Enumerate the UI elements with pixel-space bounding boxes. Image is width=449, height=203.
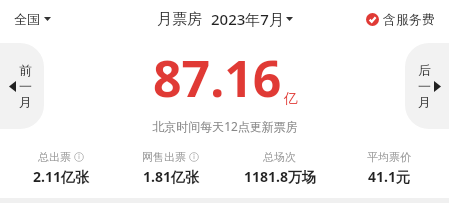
staticText: 2023年7月 bbox=[211, 9, 284, 29]
staticText: 全国 bbox=[14, 11, 40, 27]
staticText: 亿 bbox=[284, 90, 298, 108]
staticText: 平均票价 bbox=[367, 150, 411, 164]
staticText: 1181.8万场 bbox=[244, 167, 316, 186]
staticText: 月 bbox=[19, 94, 32, 110]
button[interactable]: 含服务费 bbox=[366, 11, 435, 27]
staticText: 月 bbox=[418, 94, 431, 110]
staticText: 2.11亿张 bbox=[33, 167, 89, 186]
staticText: 一 bbox=[19, 78, 32, 94]
staticText: 总场次 bbox=[263, 150, 296, 164]
staticText: 87.16 bbox=[153, 44, 282, 112]
staticText: 总出票 bbox=[38, 150, 71, 164]
button[interactable]: 月票房 bbox=[157, 9, 293, 29]
staticText: 前 bbox=[19, 62, 32, 78]
staticText: 一 bbox=[418, 78, 431, 94]
staticText: 北京时间每天12点更新票房 bbox=[152, 118, 298, 134]
button[interactable]: 上一月 bbox=[0, 43, 44, 129]
staticText: 月票房 bbox=[157, 10, 202, 29]
staticText: 后 bbox=[418, 62, 431, 78]
button[interactable]: 总场次 bbox=[225, 150, 334, 186]
button[interactable]: 下一月 bbox=[405, 43, 449, 129]
staticText: 网售出票 bbox=[142, 150, 186, 164]
button[interactable]: 平均票价 bbox=[334, 150, 443, 186]
button[interactable]: 网售出票 bbox=[116, 150, 225, 186]
staticText: 41.1元 bbox=[368, 167, 410, 186]
staticText: 1.81亿张 bbox=[143, 167, 199, 186]
button[interactable]: 全国 bbox=[14, 11, 51, 27]
button[interactable]: 总出票 bbox=[6, 150, 116, 186]
staticText: 含服务费 bbox=[383, 11, 435, 27]
